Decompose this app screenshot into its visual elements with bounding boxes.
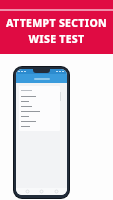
button[interactable]: Home xyxy=(38,188,45,195)
staticText: ATTEMPT SECTION xyxy=(6,16,107,30)
button[interactable] xyxy=(21,94,58,99)
button[interactable]: Section Test title bar xyxy=(16,74,67,83)
button[interactable] xyxy=(21,109,58,114)
button[interactable] xyxy=(21,104,58,109)
button[interactable] xyxy=(21,114,58,119)
button[interactable] xyxy=(21,119,58,124)
button[interactable]: Back xyxy=(24,188,31,195)
staticText: WISE TEST xyxy=(28,32,85,46)
button[interactable]: Recents xyxy=(53,188,60,195)
button[interactable] xyxy=(21,99,58,104)
button[interactable] xyxy=(21,88,58,92)
button[interactable] xyxy=(21,124,58,129)
